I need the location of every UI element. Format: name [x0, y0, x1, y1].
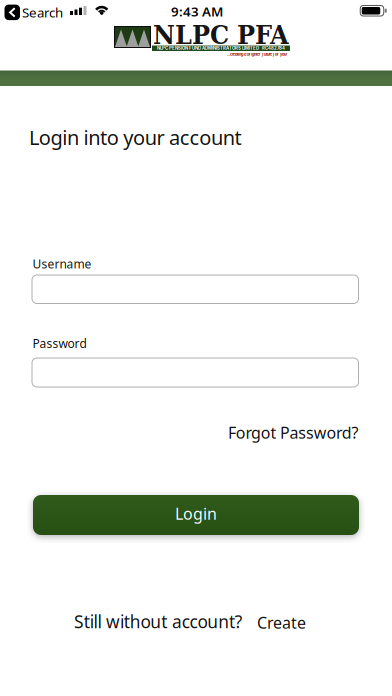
staticText: Create	[257, 612, 306, 633]
button[interactable]: Forgot Password?	[228, 422, 358, 443]
staticText: 9:43 AM	[171, 2, 223, 20]
button[interactable]: Password	[31, 357, 359, 387]
staticText: NLPC PFA	[153, 19, 289, 50]
button[interactable]: Login	[33, 495, 359, 535]
button[interactable]: Back to Search	[4, 3, 63, 21]
staticText: Login into your account	[29, 124, 241, 151]
staticText: Still without account?	[74, 610, 243, 633]
staticText: Login	[175, 503, 217, 524]
staticText: NLPC PENSION FUND ADMINISTRATORS LIMITED…	[157, 46, 285, 51]
staticText: Username	[32, 256, 91, 272]
staticText: ...creating a brighter future for you!	[227, 52, 287, 57]
button[interactable]: Create	[257, 612, 306, 633]
staticText: Forgot Password?	[228, 422, 358, 443]
staticText: Search	[22, 3, 63, 21]
staticText: Password	[32, 335, 86, 351]
button[interactable]: Username	[31, 274, 359, 304]
